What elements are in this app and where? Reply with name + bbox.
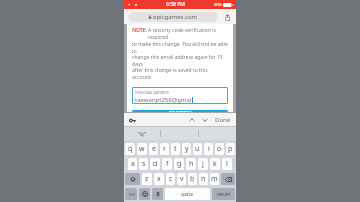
staticText: A security code verification is required xyxy=(148,27,228,41)
button[interactable]: m xyxy=(210,173,219,185)
staticText: change this email address again for 15 d… xyxy=(132,54,228,67)
button[interactable]: 123 xyxy=(125,188,137,200)
staticText: u xyxy=(195,144,200,154)
staticText: n xyxy=(201,174,206,184)
staticText: y xyxy=(185,144,189,154)
staticText: h xyxy=(189,159,194,169)
staticText: p xyxy=(228,144,233,154)
button[interactable]: Share xyxy=(222,12,232,22)
button[interactable]: t xyxy=(171,143,180,155)
button[interactable]: i xyxy=(204,143,213,155)
button[interactable]: CONFIRM xyxy=(132,110,228,112)
staticText: w xyxy=(139,144,145,154)
staticText: b xyxy=(190,174,195,184)
staticText: f xyxy=(166,159,169,169)
staticText: t xyxy=(174,144,177,154)
button[interactable]: Next field xyxy=(200,115,210,125)
staticText: c xyxy=(169,174,173,184)
staticText: NOTE: xyxy=(132,27,147,34)
button[interactable]: r xyxy=(160,143,169,155)
button[interactable]: Done xyxy=(214,116,232,124)
button[interactable]: Key xyxy=(221,173,235,185)
button[interactable]: w xyxy=(137,143,147,155)
button[interactable]: p xyxy=(226,143,235,155)
staticText: epicgames.com xyxy=(153,13,198,21)
staticText: i xyxy=(208,144,210,154)
staticText: PERSONAL ADDRESS xyxy=(135,90,169,95)
button[interactable]: a xyxy=(128,158,137,170)
button[interactable]: x xyxy=(154,173,164,185)
staticText: z xyxy=(145,174,149,184)
staticText: x xyxy=(157,174,161,184)
button[interactable]: l xyxy=(222,158,232,170)
button[interactable]: q xyxy=(125,143,135,155)
staticText: j xyxy=(202,159,204,169)
staticText: r xyxy=(163,144,166,154)
button[interactable]: epicgames.com xyxy=(128,12,218,22)
button[interactable]: g xyxy=(174,158,184,170)
button[interactable]: Key xyxy=(125,173,140,185)
button[interactable]: f xyxy=(162,158,172,170)
staticText: Done xyxy=(215,116,231,124)
staticText: after this change is saved to this accou… xyxy=(132,67,228,80)
button[interactable]: v xyxy=(177,173,186,185)
button[interactable]: Emoji xyxy=(139,188,150,200)
staticText: space xyxy=(181,191,194,197)
staticText: 6:58 PM xyxy=(166,1,185,8)
button[interactable]: j xyxy=(198,158,208,170)
button[interactable]: h xyxy=(186,158,196,170)
staticText: q xyxy=(128,144,133,154)
staticText: 123 xyxy=(128,192,135,197)
button[interactable]: n xyxy=(199,173,208,185)
staticText: g xyxy=(177,159,182,169)
staticText: taewanpt259@gmai xyxy=(135,96,192,104)
staticText: d xyxy=(153,159,158,169)
button[interactable]: k xyxy=(210,158,220,170)
button[interactable]: y xyxy=(182,143,191,155)
button[interactable]: return xyxy=(212,188,235,200)
staticText: e xyxy=(152,144,156,154)
button[interactable]: z xyxy=(142,173,152,185)
button[interactable]: b xyxy=(188,173,197,185)
staticText: v xyxy=(180,174,184,184)
button[interactable]: space xyxy=(165,188,210,200)
button[interactable]: PERSONAL ADDRESS xyxy=(132,87,228,104)
button[interactable]: o xyxy=(215,143,224,155)
staticText: a xyxy=(131,159,135,169)
staticText: CONFIRM xyxy=(168,110,192,112)
staticText: to make this change. You will not be abl… xyxy=(132,41,228,54)
staticText: return xyxy=(217,191,231,197)
staticText: o xyxy=(217,144,222,154)
button[interactable]: s xyxy=(139,158,148,170)
staticText: "q" xyxy=(138,130,147,138)
staticText: k xyxy=(213,159,217,169)
staticText: 96% xyxy=(214,2,222,7)
button[interactable]: c xyxy=(166,173,175,185)
button[interactable]: d xyxy=(150,158,160,170)
button[interactable]: Dictation xyxy=(152,188,163,200)
staticText: l xyxy=(226,159,228,169)
staticText: s xyxy=(142,159,146,169)
staticText: m xyxy=(211,174,218,184)
button[interactable]: e xyxy=(149,143,158,155)
button[interactable]: "q" xyxy=(124,127,160,140)
button[interactable]: u xyxy=(193,143,202,155)
button[interactable]: Previous field xyxy=(187,115,197,125)
button[interactable]: Passwords xyxy=(128,116,137,125)
